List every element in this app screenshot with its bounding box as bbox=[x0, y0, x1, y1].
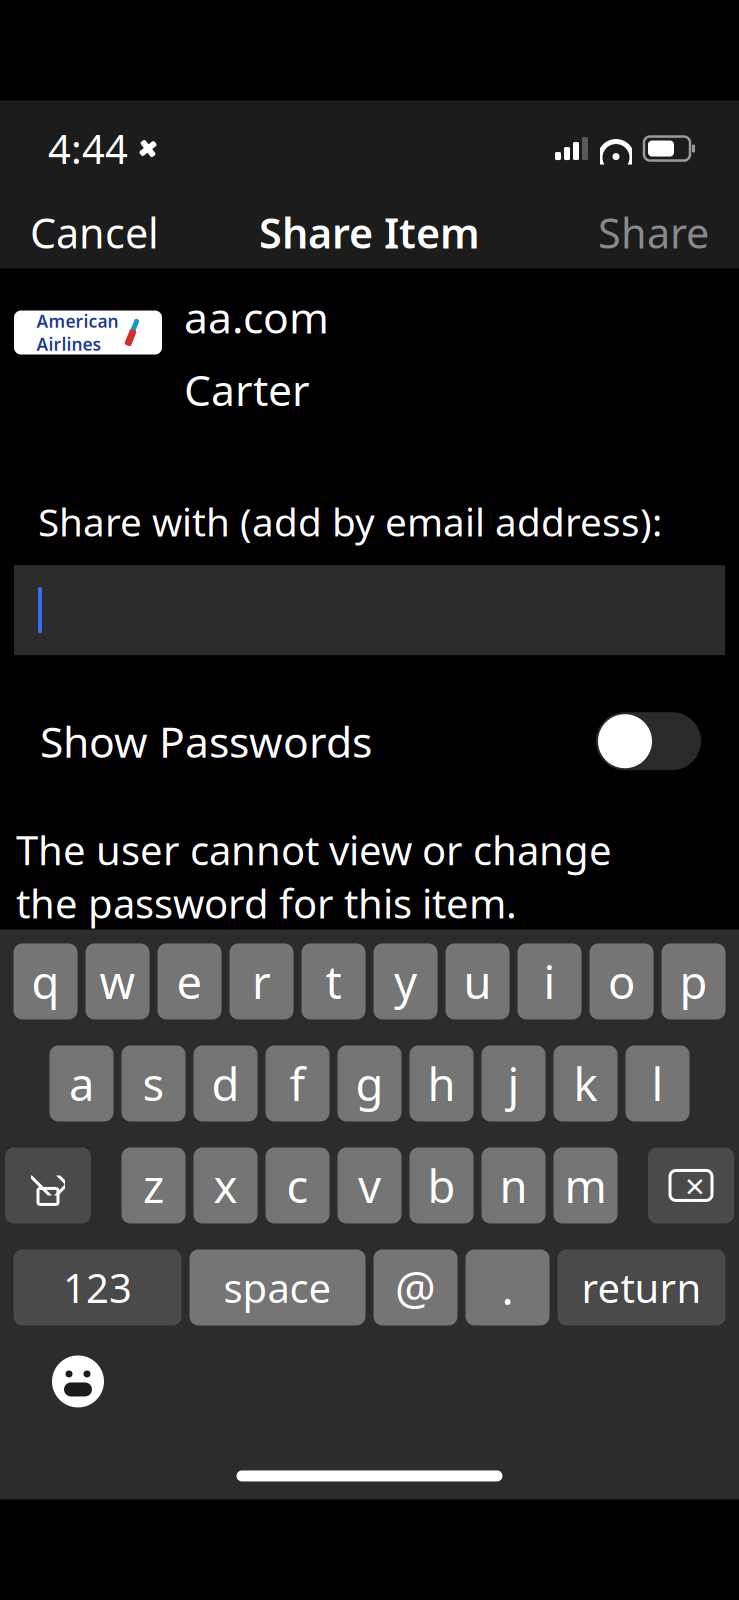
staticText: Share Item bbox=[259, 205, 480, 260]
button[interactable]: y bbox=[373, 943, 437, 1019]
button[interactable]: z bbox=[121, 1147, 185, 1223]
staticText: s bbox=[142, 1053, 164, 1114]
staticText: y bbox=[394, 951, 417, 1012]
button[interactable]: o bbox=[589, 943, 653, 1019]
button[interactable]: space bbox=[189, 1249, 365, 1325]
button[interactable]: g bbox=[337, 1045, 401, 1121]
staticText: 123 bbox=[63, 1261, 132, 1314]
staticText: d bbox=[211, 1053, 239, 1114]
staticText: The user cannot view or change the passw… bbox=[16, 823, 612, 929]
staticText: . bbox=[501, 1257, 513, 1318]
staticText: w bbox=[99, 951, 135, 1012]
staticText: a bbox=[69, 1053, 94, 1114]
button[interactable]: p bbox=[661, 943, 725, 1019]
staticText: @ bbox=[395, 1257, 436, 1318]
button[interactable]: Show Passwords toggle, off bbox=[596, 712, 701, 770]
staticText: Show Passwords bbox=[40, 713, 372, 770]
button[interactable]: l bbox=[625, 1045, 689, 1121]
staticText: p bbox=[679, 951, 707, 1012]
staticText: Share with (add by email address): bbox=[38, 496, 662, 547]
button[interactable]: Email address field bbox=[14, 565, 725, 655]
button[interactable]: s bbox=[121, 1045, 185, 1121]
staticText: z bbox=[143, 1155, 164, 1216]
staticText: f bbox=[289, 1053, 305, 1114]
button[interactable]: t bbox=[301, 943, 365, 1019]
staticText: q bbox=[31, 951, 59, 1012]
staticText: k bbox=[573, 1053, 597, 1114]
staticText: n bbox=[499, 1155, 527, 1216]
button[interactable]: d bbox=[193, 1045, 257, 1121]
staticText: x bbox=[213, 1155, 237, 1216]
button[interactable]: u bbox=[445, 943, 509, 1019]
staticText: r bbox=[252, 951, 271, 1012]
staticText: m bbox=[564, 1155, 606, 1216]
staticText: Cancel bbox=[30, 205, 159, 260]
button[interactable]: Delete bbox=[648, 1147, 734, 1223]
staticText: b bbox=[427, 1155, 455, 1216]
button[interactable]: b bbox=[409, 1147, 473, 1223]
button[interactable]: Share bbox=[568, 191, 739, 274]
staticText: u bbox=[463, 951, 491, 1012]
staticText: j bbox=[507, 1053, 519, 1114]
button[interactable]: q bbox=[13, 943, 77, 1019]
staticText: h bbox=[427, 1053, 455, 1114]
staticText: o bbox=[608, 951, 635, 1012]
button[interactable]: n bbox=[481, 1147, 545, 1223]
staticText: g bbox=[355, 1053, 383, 1114]
staticText: i bbox=[543, 951, 555, 1012]
staticText: × bbox=[685, 1162, 705, 1208]
button[interactable]: x bbox=[193, 1147, 257, 1223]
staticText: l bbox=[651, 1053, 663, 1114]
button[interactable]: i bbox=[517, 943, 581, 1019]
staticText: American Airlines bbox=[36, 309, 118, 355]
staticText: Share bbox=[598, 205, 709, 260]
button[interactable]: w bbox=[85, 943, 149, 1019]
button[interactable]: f bbox=[265, 1045, 329, 1121]
button[interactable]: m bbox=[553, 1147, 617, 1223]
button[interactable]: . bbox=[465, 1249, 549, 1325]
button[interactable]: Shift bbox=[5, 1147, 91, 1223]
staticText: aa.com bbox=[184, 288, 329, 345]
button[interactable]: Emoji keyboard bbox=[52, 1355, 104, 1407]
staticText: v bbox=[358, 1155, 381, 1216]
button[interactable]: e bbox=[157, 943, 221, 1019]
staticText: 4:44 bbox=[48, 122, 128, 175]
button[interactable]: k bbox=[553, 1045, 617, 1121]
staticText: t bbox=[325, 951, 341, 1012]
staticText: e bbox=[176, 951, 202, 1012]
button[interactable]: v bbox=[337, 1147, 401, 1223]
button[interactable]: j bbox=[481, 1045, 545, 1121]
button[interactable]: Cancel bbox=[0, 191, 189, 274]
button[interactable]: r bbox=[229, 943, 293, 1019]
button[interactable]: @ bbox=[373, 1249, 457, 1325]
button[interactable]: h bbox=[409, 1045, 473, 1121]
button[interactable]: a bbox=[49, 1045, 113, 1121]
button[interactable]: 123 bbox=[13, 1249, 181, 1325]
button[interactable]: return bbox=[557, 1249, 725, 1325]
button[interactable]: c bbox=[265, 1147, 329, 1223]
staticText: Carter bbox=[184, 361, 310, 418]
staticText: c bbox=[286, 1155, 308, 1216]
staticText: return bbox=[581, 1261, 701, 1314]
staticText: space bbox=[223, 1261, 331, 1314]
